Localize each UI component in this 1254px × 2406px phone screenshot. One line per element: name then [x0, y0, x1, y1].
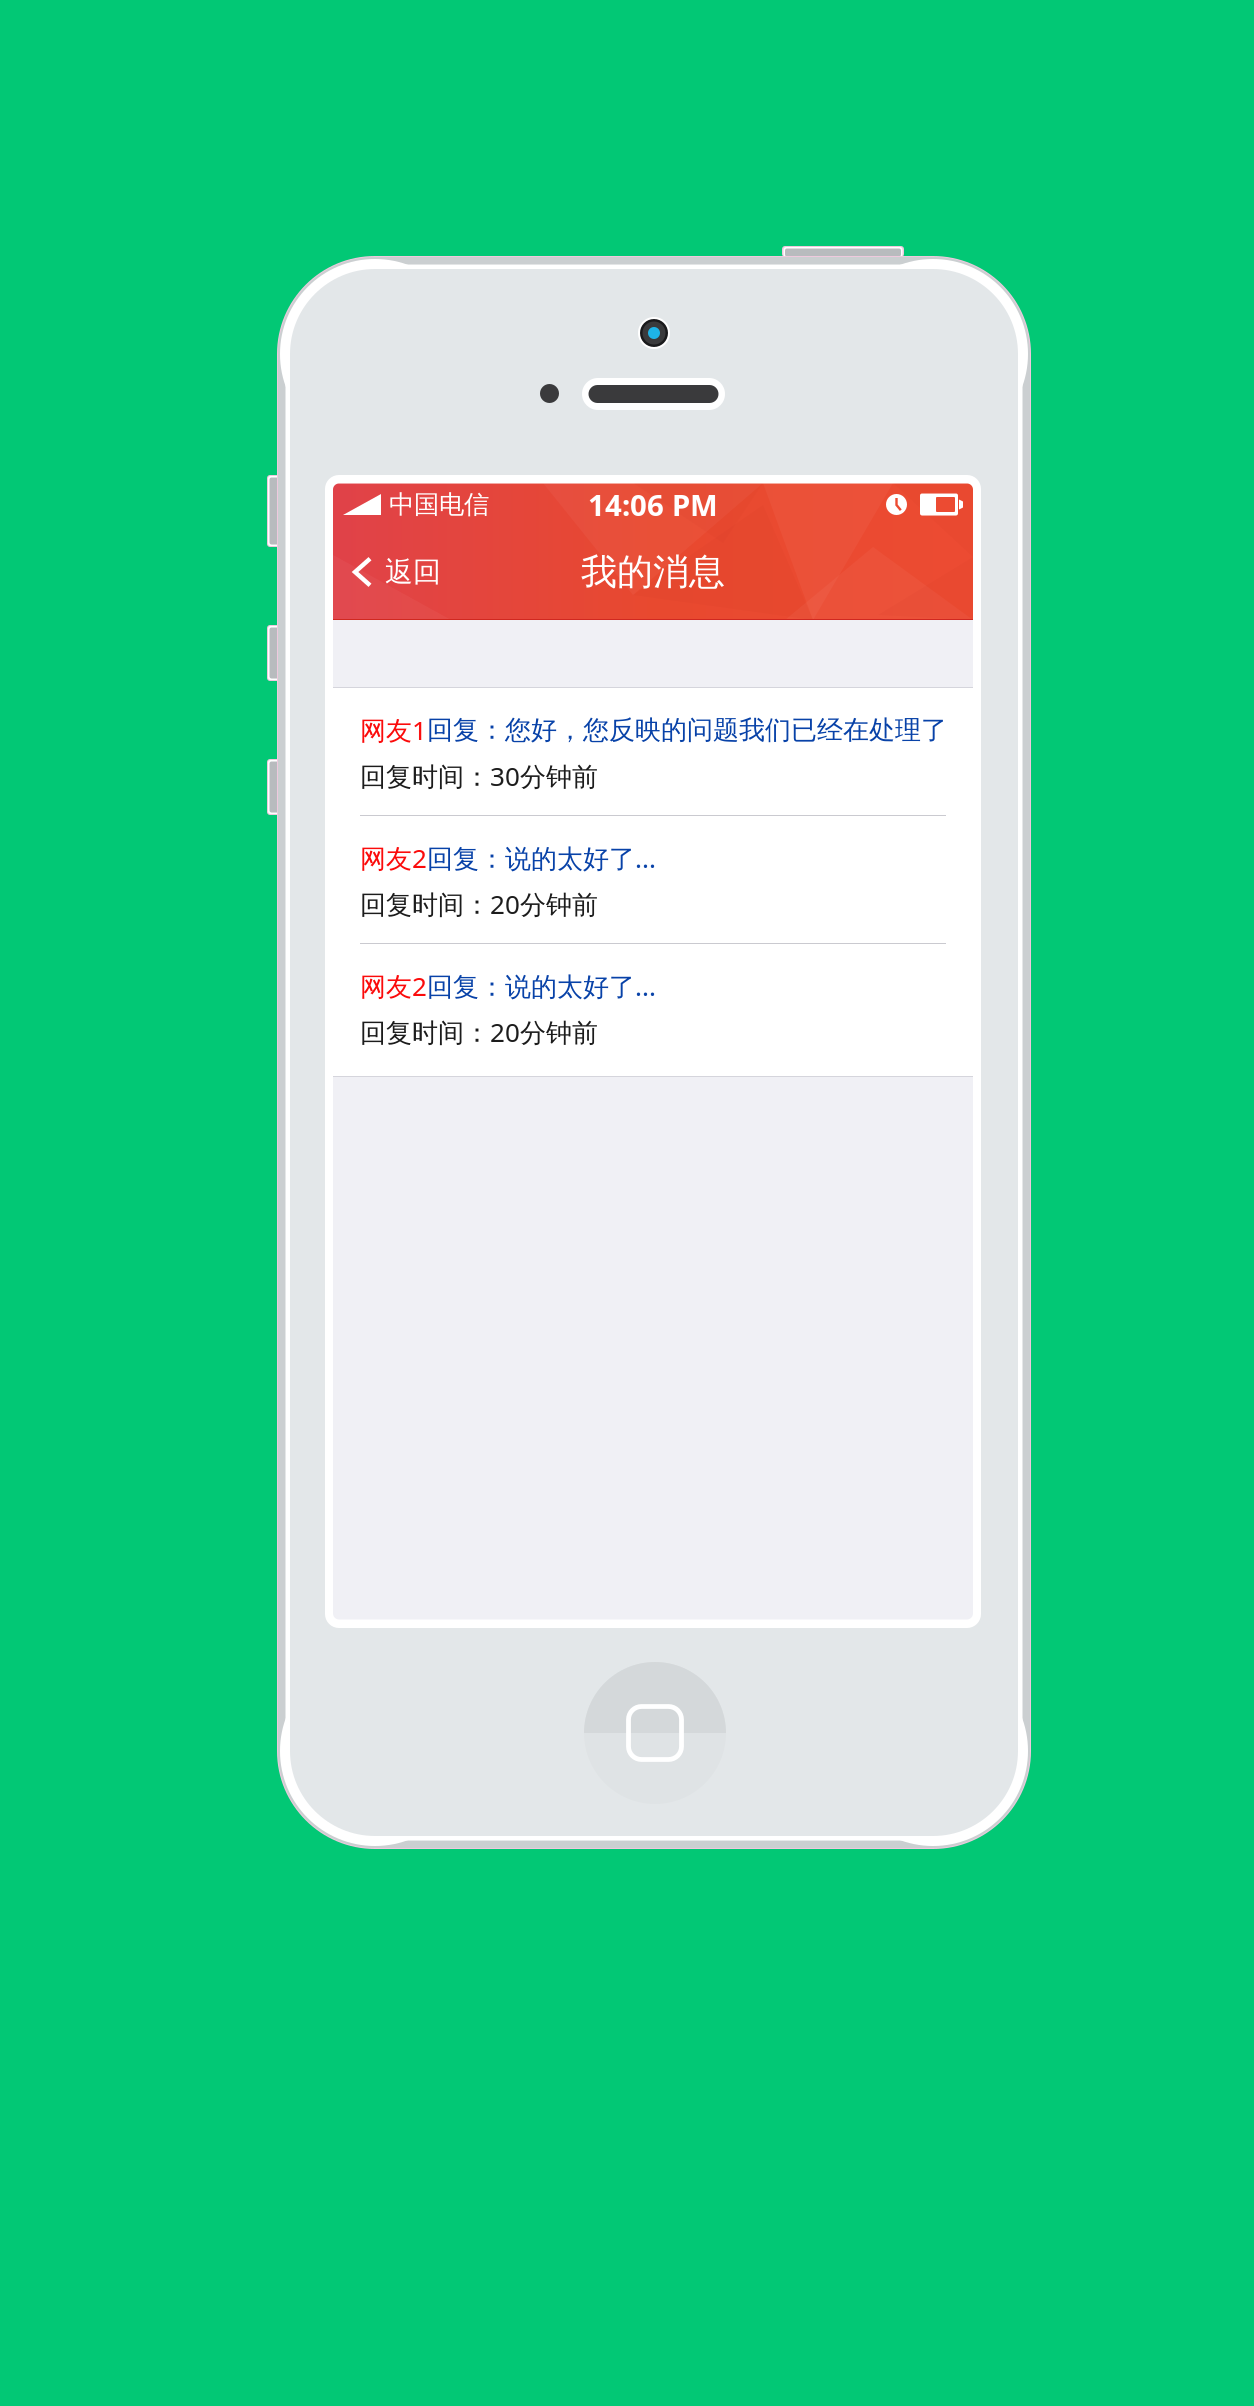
button[interactable]: 返回 — [333, 525, 459, 619]
staticText: 回复：说的太好了... — [427, 968, 656, 1004]
button[interactable]: 网友2 — [333, 944, 973, 1071]
staticText: 回复：说的太好了... — [427, 840, 656, 876]
staticText: 回复时间：20分钟前 — [360, 886, 598, 922]
staticText: 网友1 — [360, 712, 427, 748]
staticText: 14:06 PM — [588, 484, 718, 524]
staticText: 回复时间：30分钟前 — [360, 758, 598, 794]
button[interactable]: 网友2 — [333, 816, 973, 943]
staticText: 我的消息 — [581, 549, 725, 595]
staticText: 回复：您好，您反映的问题我们已经在处理了 — [427, 714, 947, 746]
staticText: 返回 — [385, 554, 441, 590]
staticText: 回复时间：20分钟前 — [360, 1014, 598, 1050]
button[interactable]: 网友1 — [333, 688, 973, 815]
staticText: 网友2 — [360, 840, 427, 876]
staticText: 网友2 — [360, 968, 427, 1004]
staticText: 中国电信 — [389, 488, 489, 520]
